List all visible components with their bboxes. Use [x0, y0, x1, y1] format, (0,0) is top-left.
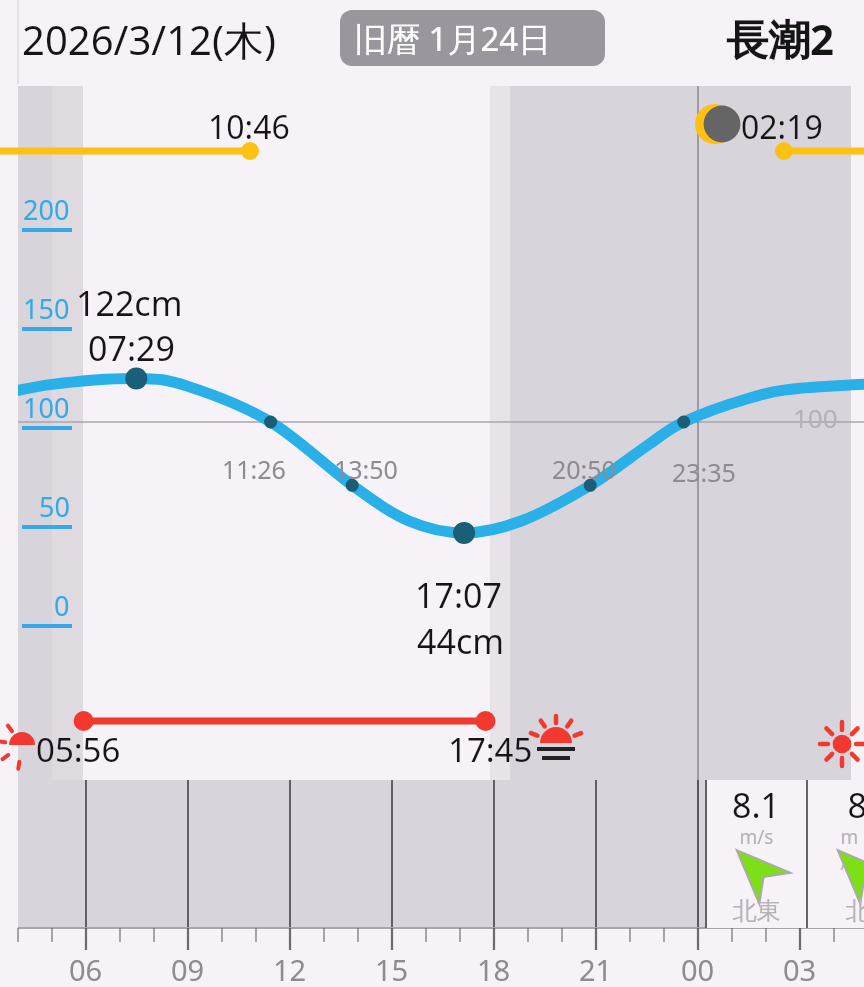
button[interactable]: Tide chart for 2026/3/12 — [0, 0, 864, 987]
